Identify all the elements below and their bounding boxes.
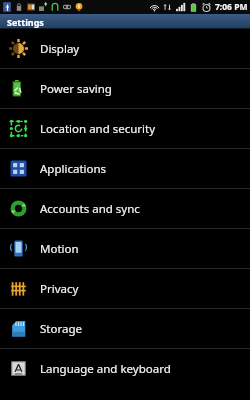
staticText: Power saving xyxy=(40,81,112,97)
staticText: Privacy xyxy=(40,281,79,297)
button[interactable]: Storage xyxy=(0,309,250,348)
staticText: Applications xyxy=(40,161,107,177)
staticText: Storage xyxy=(40,321,82,337)
button[interactable]: Location and security xyxy=(0,109,250,148)
staticText: Settings xyxy=(7,16,44,28)
button[interactable]: Motion xyxy=(0,229,250,268)
button[interactable]: Language and keyboard xyxy=(0,349,250,388)
staticText: Location and security xyxy=(40,121,156,137)
staticText: Language and keyboard xyxy=(40,361,171,377)
button[interactable]: Applications xyxy=(0,149,250,188)
button[interactable]: Display xyxy=(0,29,250,68)
staticText: Display xyxy=(40,41,80,57)
staticText: Motion xyxy=(40,241,79,257)
staticText: 7:06 PM xyxy=(215,1,248,13)
button[interactable]: Privacy xyxy=(0,269,250,308)
staticText: Accounts and sync xyxy=(40,201,140,217)
button[interactable]: Accounts and sync xyxy=(0,189,250,228)
button[interactable]: Power saving xyxy=(0,69,250,108)
